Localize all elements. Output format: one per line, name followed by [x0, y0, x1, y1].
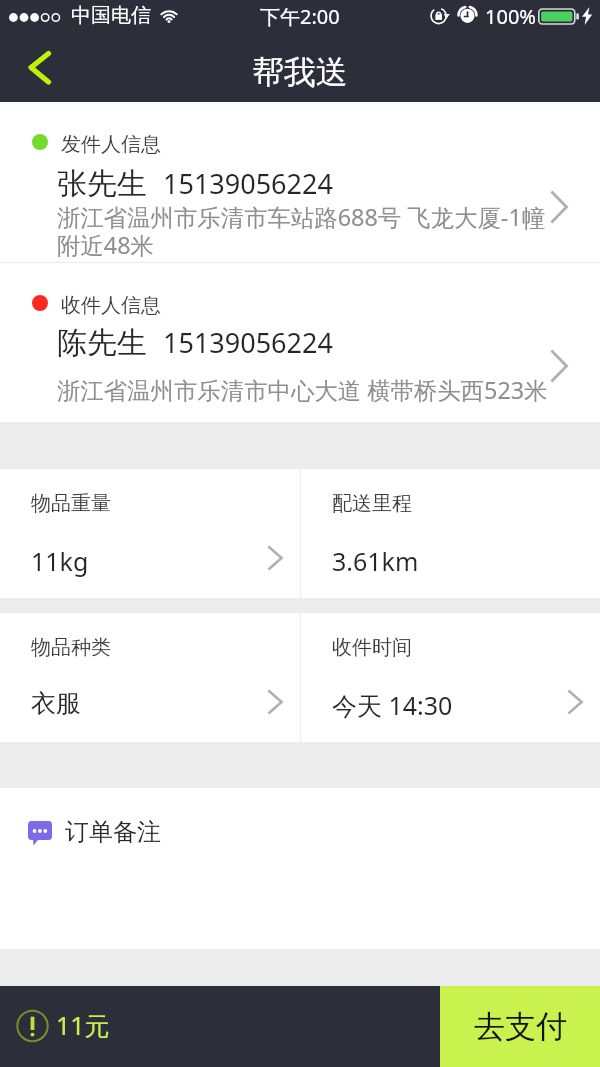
button[interactable]: 11元: [0, 986, 440, 1067]
button[interactable]: 去支付: [440, 986, 600, 1067]
staticText: 订单备注: [65, 817, 161, 847]
button[interactable]: 订单备注: [0, 788, 600, 949]
staticText: 陈先生: [57, 324, 147, 362]
staticText: 11kg: [31, 544, 89, 578]
button[interactable]: 物品重量: [0, 469, 300, 598]
staticText: 去支付: [474, 1007, 567, 1046]
staticText: 物品种类: [31, 635, 111, 660]
button[interactable]: 配送里程: [301, 469, 600, 598]
staticText: 11元: [56, 1008, 110, 1042]
button[interactable]: 收件人信息: [0, 263, 600, 422]
staticText: 帮我送: [252, 52, 348, 92]
button[interactable]: Back: [4, 40, 74, 102]
staticText: 下午2:00: [260, 3, 340, 30]
staticText: 15139056224: [163, 165, 333, 202]
button[interactable]: 发件人信息: [0, 102, 600, 262]
staticText: 15139056224: [163, 324, 333, 361]
staticText: 中国电信: [71, 3, 151, 28]
staticText: 收件人信息: [61, 293, 161, 318]
staticText: 衣服: [31, 688, 81, 719]
button[interactable]: 收件时间: [301, 613, 600, 742]
staticText: 张先生: [57, 165, 147, 203]
staticText: 收件时间: [332, 635, 412, 660]
button[interactable]: 物品种类: [0, 613, 300, 742]
staticText: 浙江省温州市乐清市车站路688号 飞龙大厦-1幢 附近48米: [57, 201, 546, 261]
staticText: 配送里程: [332, 491, 412, 516]
staticText: 发件人信息: [61, 132, 161, 157]
staticText: 物品重量: [31, 491, 111, 516]
staticText: 100%: [485, 3, 536, 30]
staticText: 3.61km: [332, 544, 419, 578]
staticText: 浙江省温州市乐清市中心大道 横带桥头西523米: [57, 374, 548, 406]
staticText: 今天 14:30: [332, 688, 453, 722]
